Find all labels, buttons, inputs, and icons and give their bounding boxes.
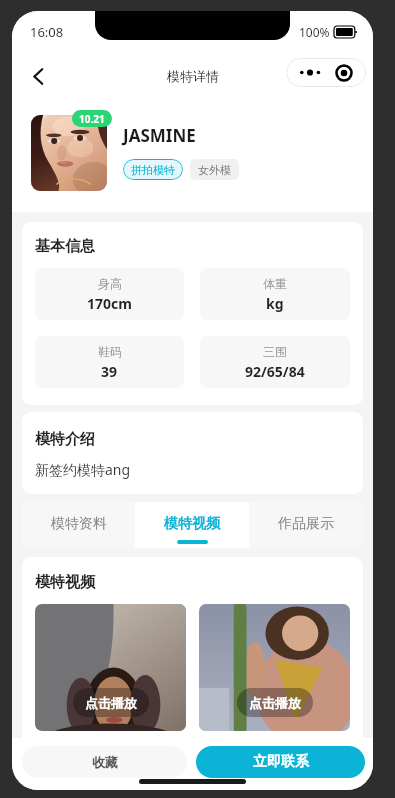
staticText: 拼拍模特 xyxy=(131,163,175,177)
staticText: 100% xyxy=(299,24,330,40)
staticText: 16:08 xyxy=(30,23,64,41)
staticText: 模特详情 xyxy=(167,68,219,84)
staticText: 92/65/84 xyxy=(245,362,305,381)
button[interactable]: 模特视频 xyxy=(135,502,249,548)
staticText: 170cm xyxy=(87,294,132,313)
button[interactable]: Back xyxy=(18,56,58,96)
button[interactable]: 立即联系 xyxy=(196,746,365,778)
staticText: 新签约模特ang xyxy=(35,460,131,479)
staticText: 体重 xyxy=(263,276,287,291)
button[interactable]: 收藏 xyxy=(22,746,187,778)
staticText: 39 xyxy=(101,362,118,381)
staticText: 模特视频 xyxy=(164,515,220,533)
staticText: kg xyxy=(266,294,284,313)
staticText: 点击播放 xyxy=(249,695,301,711)
staticText: 作品展示 xyxy=(278,515,334,533)
staticText: JASMINE xyxy=(123,124,196,147)
staticText: 模特介绍 xyxy=(35,430,95,449)
staticText: 立即联系 xyxy=(253,753,309,771)
button[interactable]: 拼拍模特 xyxy=(131,159,175,180)
staticText: 模特视频 xyxy=(35,573,95,592)
button[interactable]: More options xyxy=(286,58,366,87)
staticText: 收藏 xyxy=(92,754,118,770)
staticText: 点击播放 xyxy=(85,695,137,711)
staticText: 身高 xyxy=(98,276,122,291)
staticText: 基本信息 xyxy=(35,237,95,256)
staticText: 女外模 xyxy=(198,163,231,177)
button[interactable]: 女外模 xyxy=(198,159,231,180)
button[interactable]: 作品展示 xyxy=(249,502,363,548)
button[interactable]: Play video xyxy=(199,604,350,731)
staticText: 模特资料 xyxy=(51,515,107,533)
staticText: 10.21 xyxy=(79,112,105,126)
button[interactable]: 模特资料 xyxy=(22,502,135,548)
staticText: 三围 xyxy=(263,344,287,359)
button[interactable]: Play video xyxy=(35,604,186,731)
staticText: 鞋码 xyxy=(98,344,122,359)
